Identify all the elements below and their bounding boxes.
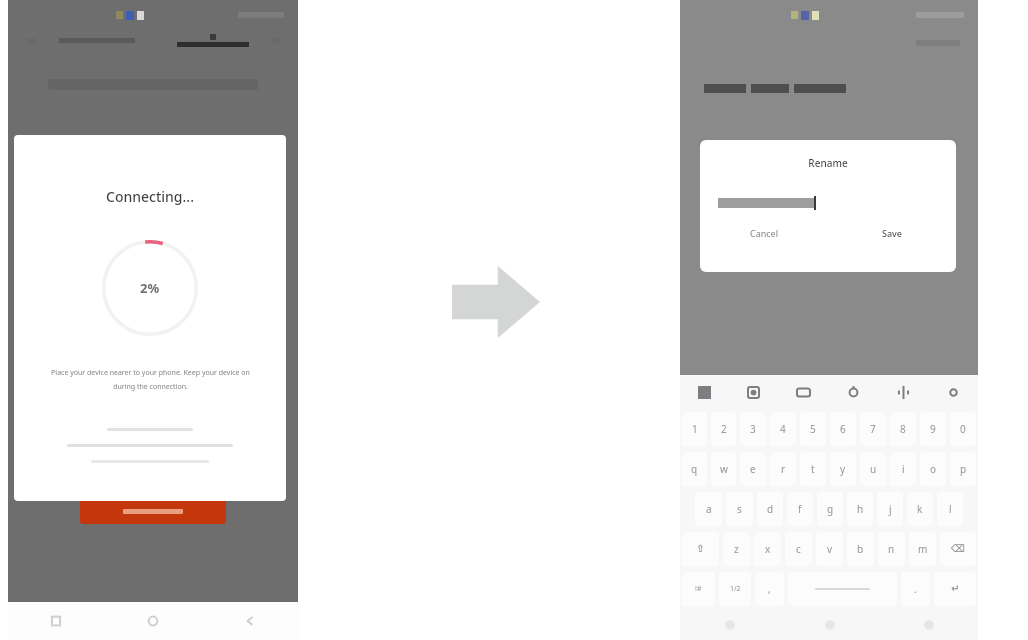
staticText: z bbox=[734, 542, 739, 556]
staticText: Connecting... bbox=[106, 187, 194, 206]
button[interactable] bbox=[788, 572, 897, 606]
button[interactable]: v bbox=[816, 532, 843, 566]
button[interactable]: z bbox=[723, 532, 750, 566]
button[interactable]: ⌫ bbox=[940, 532, 976, 566]
button[interactable]: 0 bbox=[950, 412, 976, 446]
button[interactable]: 1/2 bbox=[719, 572, 751, 606]
staticText: i bbox=[902, 462, 905, 476]
staticText: p bbox=[960, 462, 967, 476]
button[interactable]: ↵ bbox=[934, 572, 976, 606]
button[interactable]: e bbox=[740, 452, 766, 486]
staticText: t bbox=[811, 462, 815, 476]
button[interactable]: l bbox=[937, 492, 963, 526]
staticText: o bbox=[930, 462, 937, 476]
button[interactable]: Save bbox=[828, 210, 956, 256]
button[interactable]: 8 bbox=[890, 412, 916, 446]
button[interactable]: ⇧ bbox=[682, 532, 719, 566]
button[interactable]: n bbox=[878, 532, 905, 566]
staticText: r bbox=[781, 462, 786, 476]
staticText: , bbox=[768, 582, 771, 596]
staticText: 7 bbox=[870, 422, 876, 436]
button[interactable]: r bbox=[770, 452, 796, 486]
button[interactable]: m bbox=[909, 532, 936, 566]
staticText: 5 bbox=[810, 422, 816, 436]
button[interactable]: More bbox=[928, 375, 978, 409]
button[interactable]: Emoji bbox=[680, 375, 729, 409]
button[interactable]: q bbox=[682, 452, 707, 486]
button[interactable]: , bbox=[755, 572, 784, 606]
staticText: . bbox=[914, 582, 917, 596]
staticText: n bbox=[888, 542, 895, 556]
button[interactable]: Cancel bbox=[700, 210, 828, 256]
button[interactable]: Recents bbox=[8, 602, 104, 640]
staticText: x bbox=[765, 542, 771, 556]
staticText: w bbox=[720, 462, 728, 476]
button[interactable]: i bbox=[890, 452, 916, 486]
button[interactable]: k bbox=[907, 492, 933, 526]
staticText: 3 bbox=[750, 422, 756, 436]
staticText: ↵ bbox=[951, 583, 960, 595]
staticText: y bbox=[840, 462, 846, 476]
staticText: 6 bbox=[840, 422, 846, 436]
staticText: ⇧ bbox=[696, 543, 705, 555]
staticText: l bbox=[949, 502, 952, 516]
staticText: Cancel bbox=[750, 227, 779, 239]
staticText: u bbox=[870, 462, 877, 476]
button[interactable]: h bbox=[847, 492, 873, 526]
staticText: f bbox=[798, 502, 802, 516]
button[interactable]: 5 bbox=[800, 412, 826, 446]
button[interactable]: x bbox=[754, 532, 781, 566]
button[interactable]: a bbox=[695, 492, 722, 526]
button[interactable]: Voice bbox=[878, 375, 928, 409]
button[interactable]: Back bbox=[201, 602, 298, 640]
button[interactable]: s bbox=[726, 492, 753, 526]
button[interactable]: p bbox=[950, 452, 976, 486]
button[interactable]: 4 bbox=[770, 412, 796, 446]
button[interactable]: 6 bbox=[830, 412, 856, 446]
button[interactable]: Settings bbox=[828, 375, 878, 409]
button[interactable]: w bbox=[711, 452, 736, 486]
staticText: 0 bbox=[960, 422, 966, 436]
staticText: Save bbox=[882, 227, 903, 239]
button[interactable]: y bbox=[830, 452, 856, 486]
staticText: s bbox=[737, 502, 742, 516]
button[interactable]: Clipboard bbox=[778, 375, 828, 409]
staticText: k bbox=[917, 502, 923, 516]
button[interactable]: t bbox=[800, 452, 826, 486]
button[interactable] bbox=[80, 498, 226, 524]
staticText: j bbox=[889, 502, 892, 516]
staticText: h bbox=[857, 502, 864, 516]
button[interactable]: j bbox=[877, 492, 903, 526]
staticText: c bbox=[796, 542, 801, 556]
button[interactable]: 3 bbox=[740, 412, 766, 446]
button[interactable]: Camera bbox=[729, 375, 778, 409]
button[interactable]: u bbox=[860, 452, 886, 486]
button[interactable]: o bbox=[920, 452, 946, 486]
button[interactable]: d bbox=[757, 492, 783, 526]
staticText: 2 bbox=[721, 422, 727, 436]
button[interactable]: 2 bbox=[711, 412, 736, 446]
button[interactable]: Home bbox=[104, 602, 201, 640]
staticText: during the connection. bbox=[113, 382, 188, 392]
staticText: ⌫ bbox=[951, 543, 966, 555]
button[interactable]: !# bbox=[682, 572, 715, 606]
button[interactable]: f bbox=[787, 492, 813, 526]
staticText: !# bbox=[695, 584, 702, 594]
staticText: v bbox=[827, 542, 833, 556]
button[interactable]: c bbox=[785, 532, 812, 566]
button[interactable]: g bbox=[817, 492, 843, 526]
staticText: e bbox=[750, 462, 756, 476]
button[interactable]: 9 bbox=[920, 412, 946, 446]
staticText: Rename bbox=[700, 156, 956, 170]
button[interactable]: b bbox=[847, 532, 874, 566]
button[interactable]: 7 bbox=[860, 412, 886, 446]
staticText: 1 bbox=[692, 422, 698, 436]
button[interactable]: 1 bbox=[682, 412, 707, 446]
staticText: 8 bbox=[900, 422, 906, 436]
staticText: 1/2 bbox=[730, 584, 741, 594]
